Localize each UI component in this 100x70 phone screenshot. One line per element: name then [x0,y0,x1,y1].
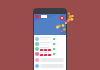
button[interactable] [34,51,66,56]
button[interactable]: Brand logo [35,15,39,18]
button[interactable] [34,63,66,69]
button[interactable]: Search [41,15,47,18]
button[interactable] [34,36,66,41]
button[interactable] [34,46,66,51]
button[interactable] [34,57,66,63]
button[interactable] [34,41,66,46]
